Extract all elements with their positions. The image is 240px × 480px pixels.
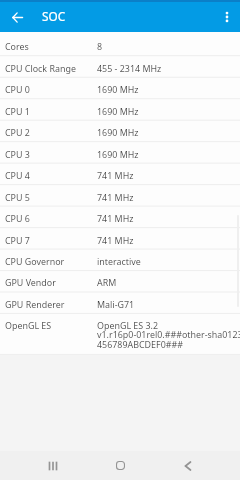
staticText: 455 - 2314 MHz xyxy=(97,62,162,74)
staticText: OpenGL ES 3.2 v1.r16p0-01rel0.###other-s… xyxy=(97,319,240,351)
staticText: 741 MHz xyxy=(97,212,134,224)
button[interactable]: Back xyxy=(168,451,208,480)
staticText: CPU 1 xyxy=(5,105,30,117)
staticText: CPU Governor xyxy=(5,255,65,267)
staticText: CPU 6 xyxy=(5,212,30,224)
staticText: GPU Vendor xyxy=(5,276,56,288)
button[interactable]: GPU Renderer xyxy=(0,292,240,313)
button[interactable]: GPU Vendor xyxy=(0,270,240,291)
staticText: GPU Renderer xyxy=(5,298,65,310)
button[interactable]: More options xyxy=(215,5,239,29)
staticText: ARM xyxy=(97,276,117,288)
staticText: SOC xyxy=(42,8,66,24)
button[interactable]: CPU Clock Range xyxy=(0,56,240,77)
button[interactable]: CPU 2 xyxy=(0,120,240,141)
staticText: 741 MHz xyxy=(97,234,134,246)
staticText: CPU 3 xyxy=(5,148,30,160)
staticText: 1690 MHz xyxy=(97,83,139,95)
button[interactable]: CPU 6 xyxy=(0,206,240,227)
staticText: Cores xyxy=(5,40,29,52)
staticText: 741 MHz xyxy=(97,191,134,203)
staticText: CPU 7 xyxy=(5,234,30,246)
button[interactable]: Navigate up xyxy=(5,5,29,29)
staticText: 1690 MHz xyxy=(97,148,139,160)
staticText: 1690 MHz xyxy=(97,126,139,138)
button[interactable]: CPU 3 xyxy=(0,142,240,163)
staticText: CPU 4 xyxy=(5,169,30,181)
button[interactable]: Cores xyxy=(0,34,240,55)
staticText: OpenGL ES xyxy=(5,319,52,331)
staticText: CPU 2 xyxy=(5,126,30,138)
staticText: interactive xyxy=(97,255,141,267)
staticText: CPU 0 xyxy=(5,83,30,95)
button[interactable]: CPU 1 xyxy=(0,99,240,120)
button[interactable]: CPU 0 xyxy=(0,77,240,98)
staticText: Mali-G71 xyxy=(97,298,135,310)
button[interactable]: OpenGL ES xyxy=(0,313,240,354)
button[interactable]: Home xyxy=(100,451,140,480)
button[interactable]: Recent apps xyxy=(33,451,73,480)
staticText: CPU Clock Range xyxy=(5,62,76,74)
button[interactable]: CPU 5 xyxy=(0,185,240,206)
staticText: 1690 MHz xyxy=(97,105,139,117)
staticText: 741 MHz xyxy=(97,169,134,181)
staticText: CPU 5 xyxy=(5,191,30,203)
button[interactable]: CPU 4 xyxy=(0,163,240,184)
staticText: 8 xyxy=(97,40,103,52)
button[interactable]: CPU 7 xyxy=(0,228,240,249)
button[interactable]: CPU Governor xyxy=(0,249,240,270)
